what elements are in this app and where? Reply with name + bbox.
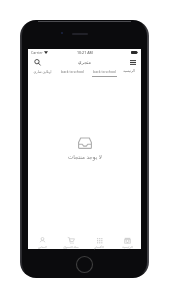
staticText: الرئيسية — [122, 245, 133, 248]
staticText: اونلاين شاري — [33, 69, 52, 74]
staticText: لا يوجد منتجات — [68, 153, 102, 161]
button[interactable]: Menu — [125, 55, 141, 70]
staticText: سلة التسوق — [63, 245, 79, 249]
staticText: الأقسام — [94, 245, 104, 248]
staticText: حسابي — [38, 245, 47, 248]
button[interactable]: الرئيسية — [119, 69, 139, 78]
staticText: back to school — [93, 69, 116, 74]
staticText: 10:21 AM — [77, 50, 93, 55]
button[interactable]: back to school — [60, 69, 85, 78]
button[interactable]: حسابي — [28, 232, 57, 249]
button[interactable]: الرئيسية — [113, 232, 141, 249]
staticText: الرئيسية — [123, 69, 135, 73]
button[interactable]: back to school — [92, 69, 117, 78]
button[interactable]: سلة التسوق — [57, 232, 85, 249]
staticText: Carrier — [31, 50, 43, 55]
button[interactable]: اونلاين شاري — [30, 69, 55, 78]
button[interactable]: الأقسام — [85, 232, 113, 249]
staticText: متجري — [78, 60, 91, 65]
button[interactable]: Search — [29, 55, 45, 70]
staticText: back to school — [61, 69, 84, 74]
